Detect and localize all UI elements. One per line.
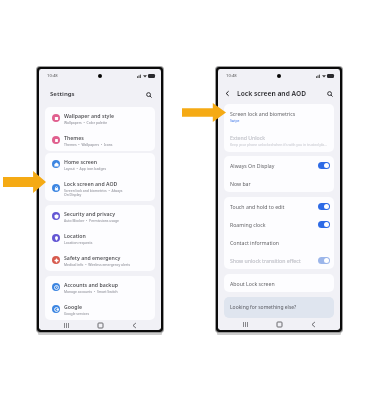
button[interactable]: Search [144,90,153,99]
button[interactable]: Back [223,89,232,98]
button[interactable]: Contact information [224,233,334,251]
button[interactable]: Extend Unlock [224,128,334,152]
button[interactable]: Always On Display [224,156,334,174]
staticText: Swipe [230,118,240,123]
button[interactable]: Themes [45,129,155,151]
staticText: Home screen [64,158,98,165]
staticText: 10:48 [226,73,237,79]
button[interactable]: Home [272,318,286,330]
button[interactable]: Home [93,320,107,330]
staticText: Now bar [230,180,251,187]
button[interactable]: Google [45,298,155,320]
staticText: Settings [50,90,75,98]
staticText: Looking for something else? [230,304,297,311]
staticText: Manage accounts • Smart Switch [64,289,139,294]
button[interactable]: Touch and hold to edit [224,197,334,215]
staticText: Lock screen and AOD [64,180,118,187]
button[interactable]: Now bar [224,174,334,192]
button[interactable]: Location [45,227,155,249]
button[interactable]: Home screen [45,153,155,175]
button[interactable]: Search [325,89,334,98]
staticText: Wallpapers • Color palette [64,120,139,125]
button[interactable]: Show unlock transition effect [224,251,334,269]
staticText: Auto Blocker • Permissions usage [64,218,139,223]
button[interactable]: Wallpaper and style [45,107,155,129]
button[interactable]: Lock screen and AOD [45,175,155,201]
button[interactable]: Accounts and backup [45,276,155,298]
button[interactable]: Back [127,320,141,330]
staticText: Screen lock and biometrics [230,110,296,117]
staticText: Accounts and backup [64,281,118,288]
staticText: Location requests [64,240,139,245]
staticText: Layout • App icon badges [64,166,139,171]
staticText: Keep your phone unlocked when it's with … [230,142,328,147]
staticText: Security and privacy [64,210,116,217]
staticText: Safety and emergency [64,254,121,261]
staticText: Show unlock transition effect [230,257,301,264]
staticText: 10:48 [47,73,58,79]
button[interactable]: Roaming clock [224,215,334,233]
button[interactable]: Screen lock and biometrics [224,104,334,128]
staticText: Lock screen and AOD [237,89,307,98]
staticText: Contact information [230,239,280,246]
staticText: Roaming clock [230,221,266,228]
staticText: Always On Display [230,162,275,169]
button[interactable]: Recents [59,320,73,330]
staticText: Themes [64,134,84,141]
staticText: Extend Unlock [230,134,265,141]
staticText: Themes • Wallpapers • Icons [64,142,139,147]
staticText: Screen lock and biometrics • Always On D… [64,188,126,197]
staticText: About Lock screen [230,280,275,287]
button[interactable]: Back [306,318,320,330]
button[interactable]: Security and privacy [45,205,155,227]
button[interactable]: About Lock screen [224,274,334,292]
staticText: Wallpaper and style [64,112,114,119]
staticText: Google [64,303,82,310]
staticText: Google services [64,311,139,316]
staticText: Medical info • Wireless emergency alerts [64,262,139,267]
button[interactable]: Looking for something else? [224,297,334,318]
button[interactable]: Recents [238,318,252,330]
button[interactable]: Safety and emergency [45,249,155,271]
staticText: Touch and hold to edit [230,203,285,210]
staticText: Location [64,232,86,239]
